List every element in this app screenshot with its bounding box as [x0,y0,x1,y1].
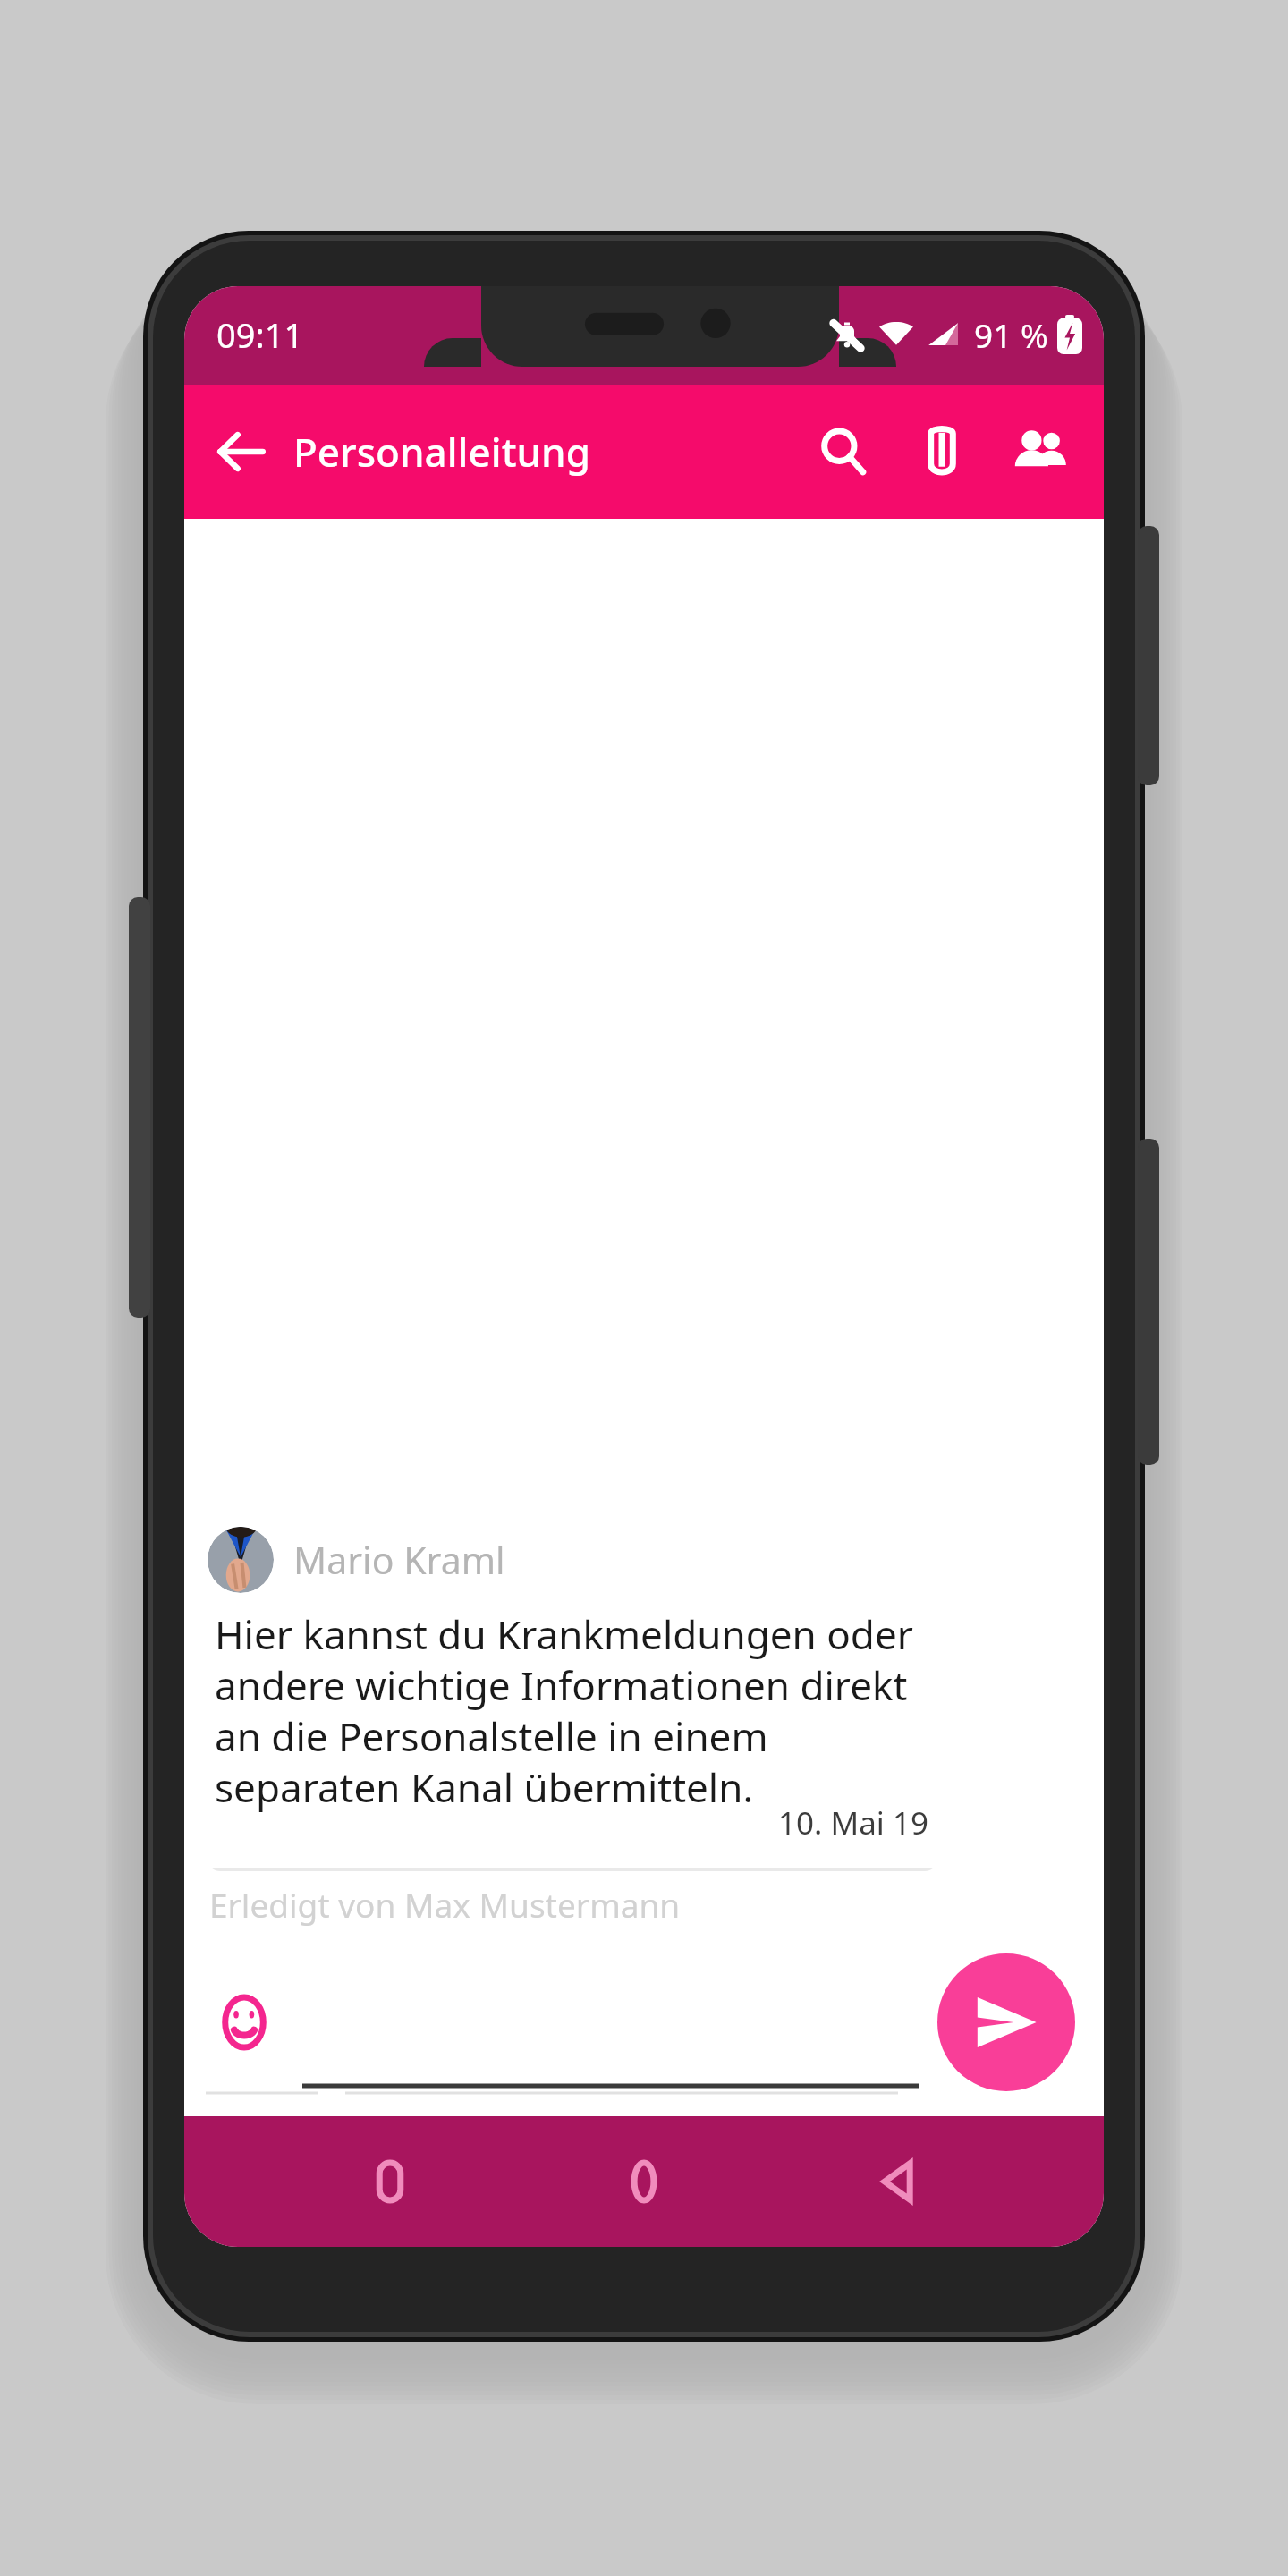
button[interactable]: Emoji [202,1980,286,2064]
button[interactable]: Home [596,2133,692,2230]
button[interactable]: Search [794,402,893,501]
staticText: Hier kannst du Krankmeldungen oder ander… [215,1607,928,1814]
staticText: 91 % [974,312,1048,357]
staticText: 10. Mai 19 [215,1801,928,1844]
staticText: Personalleitung [293,425,590,479]
staticText: Erledigt von Max Mustermann [209,1882,681,1927]
staticText: 09:11 [216,311,304,358]
button[interactable]: Mario Kraml avatar [208,1527,274,1593]
button[interactable]: Back [850,2133,946,2230]
button[interactable]: Recents [342,2133,438,2230]
button[interactable]: Members [991,402,1089,501]
button[interactable] [302,1955,919,2089]
staticText: Mario Kraml [293,1535,505,1585]
button[interactable]: Attach file [893,402,991,501]
button[interactable]: Hier kannst du Krankmeldungen oder ander… [208,1602,937,1871]
button[interactable]: Back [199,409,284,495]
button[interactable]: Send [937,1953,1075,2091]
